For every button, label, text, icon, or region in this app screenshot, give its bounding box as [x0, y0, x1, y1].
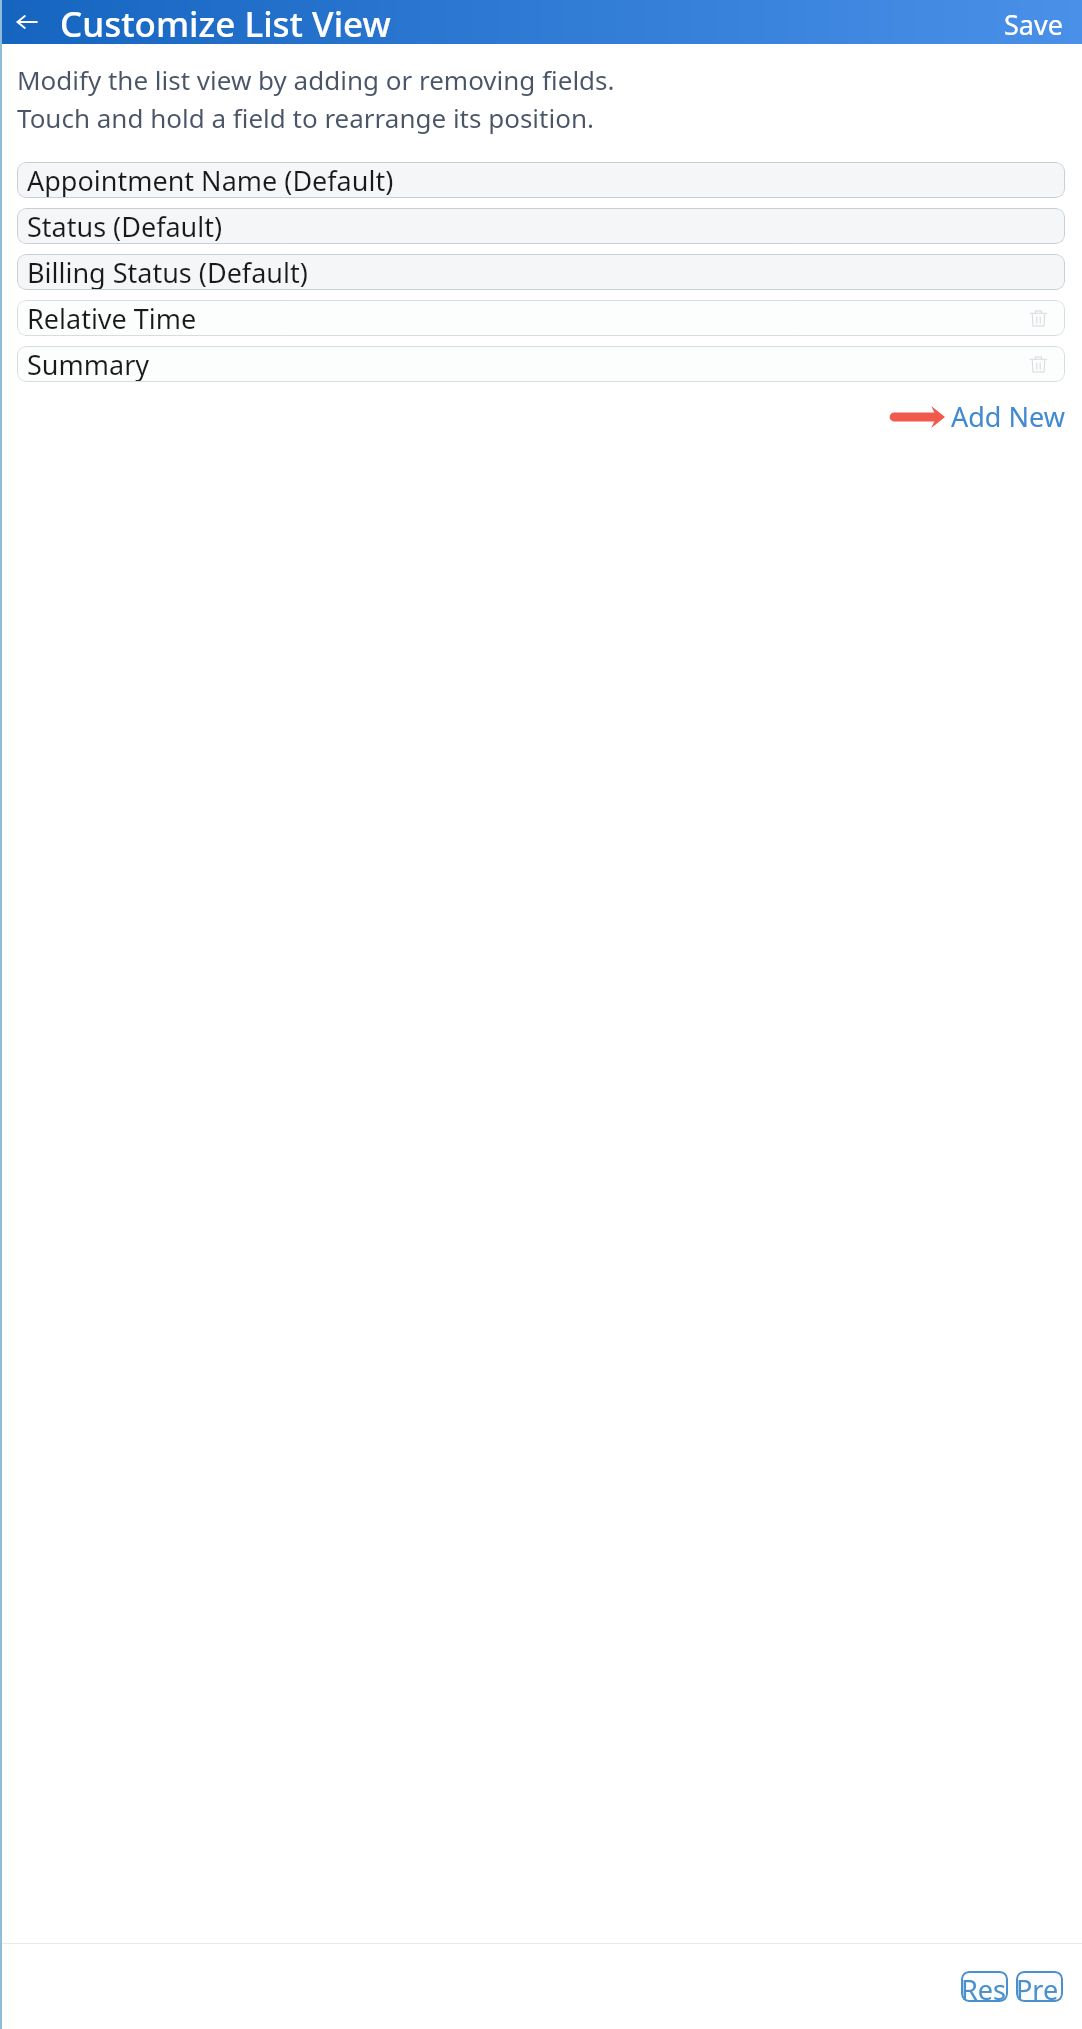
- staticText: Status (Default): [27, 208, 223, 244]
- button[interactable]: Save: [992, 0, 1075, 44]
- button[interactable]: Relative Time: [17, 300, 1065, 336]
- button[interactable]: Appointment Name (Default): [17, 162, 1065, 198]
- staticText: Add New: [951, 398, 1065, 435]
- staticText: Reset: [961, 1971, 1008, 2002]
- staticText: Save: [1004, 6, 1063, 38]
- staticText: Relative Time: [27, 300, 197, 336]
- button[interactable]: Delete Relative Time: [1025, 305, 1051, 331]
- staticText: Summary: [27, 346, 150, 382]
- button[interactable]: Billing Status (Default): [17, 254, 1065, 290]
- button[interactable]: Add New: [951, 398, 1065, 435]
- staticText: Customize List View: [60, 0, 391, 44]
- button[interactable]: Status (Default): [17, 208, 1065, 244]
- staticText: Billing Status (Default): [27, 254, 308, 290]
- staticText: Preview: [1016, 1971, 1063, 2002]
- button[interactable]: Delete Summary: [1025, 351, 1051, 377]
- staticText: Appointment Name (Default): [27, 162, 394, 198]
- button[interactable]: Preview: [1016, 1971, 1063, 2002]
- staticText: Modify the list view by adding or removi…: [17, 62, 615, 135]
- button[interactable]: Summary: [17, 346, 1065, 382]
- button[interactable]: Reset: [961, 1971, 1008, 2002]
- button[interactable]: Back: [8, 3, 46, 41]
